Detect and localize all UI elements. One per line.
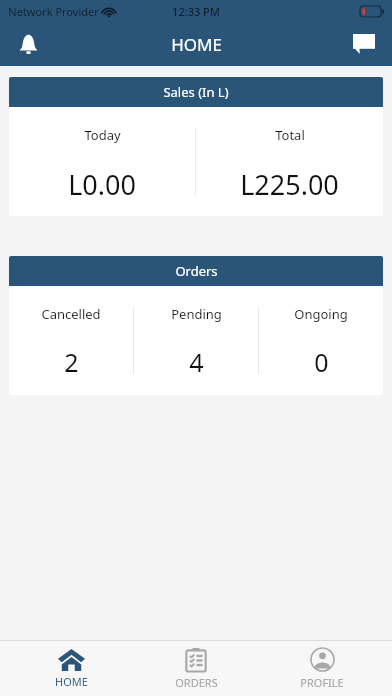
staticText: 2 [64, 345, 79, 379]
button[interactable]: Notifications [0, 22, 56, 66]
staticText: Sales (In L) [163, 83, 229, 101]
staticText: Total [275, 126, 305, 144]
staticText: ORDERS [175, 675, 218, 690]
button[interactable]: ORDERS [141, 641, 251, 696]
button[interactable]: Sales (In L) [9, 77, 383, 216]
staticText: 12:33 PM [172, 4, 220, 19]
staticText: HOME [171, 33, 222, 56]
button[interactable]: Orders [9, 256, 383, 395]
staticText: HOME [55, 674, 88, 689]
staticText: Network Provider [8, 4, 99, 19]
staticText: Today [84, 126, 121, 144]
staticText: L0.00 [68, 166, 136, 203]
staticText: PROFILE [300, 675, 344, 690]
button[interactable]: PROFILE [267, 641, 377, 696]
staticText: Pending [171, 305, 222, 323]
staticText: Cancelled [41, 305, 101, 323]
button[interactable]: HOME [16, 641, 126, 696]
button[interactable]: Messages [336, 22, 392, 66]
staticText: Ongoing [294, 305, 348, 323]
staticText: 4 [189, 345, 204, 379]
staticText: Orders [175, 262, 218, 280]
staticText: 0 [314, 345, 329, 379]
staticText: L225.00 [240, 166, 339, 203]
